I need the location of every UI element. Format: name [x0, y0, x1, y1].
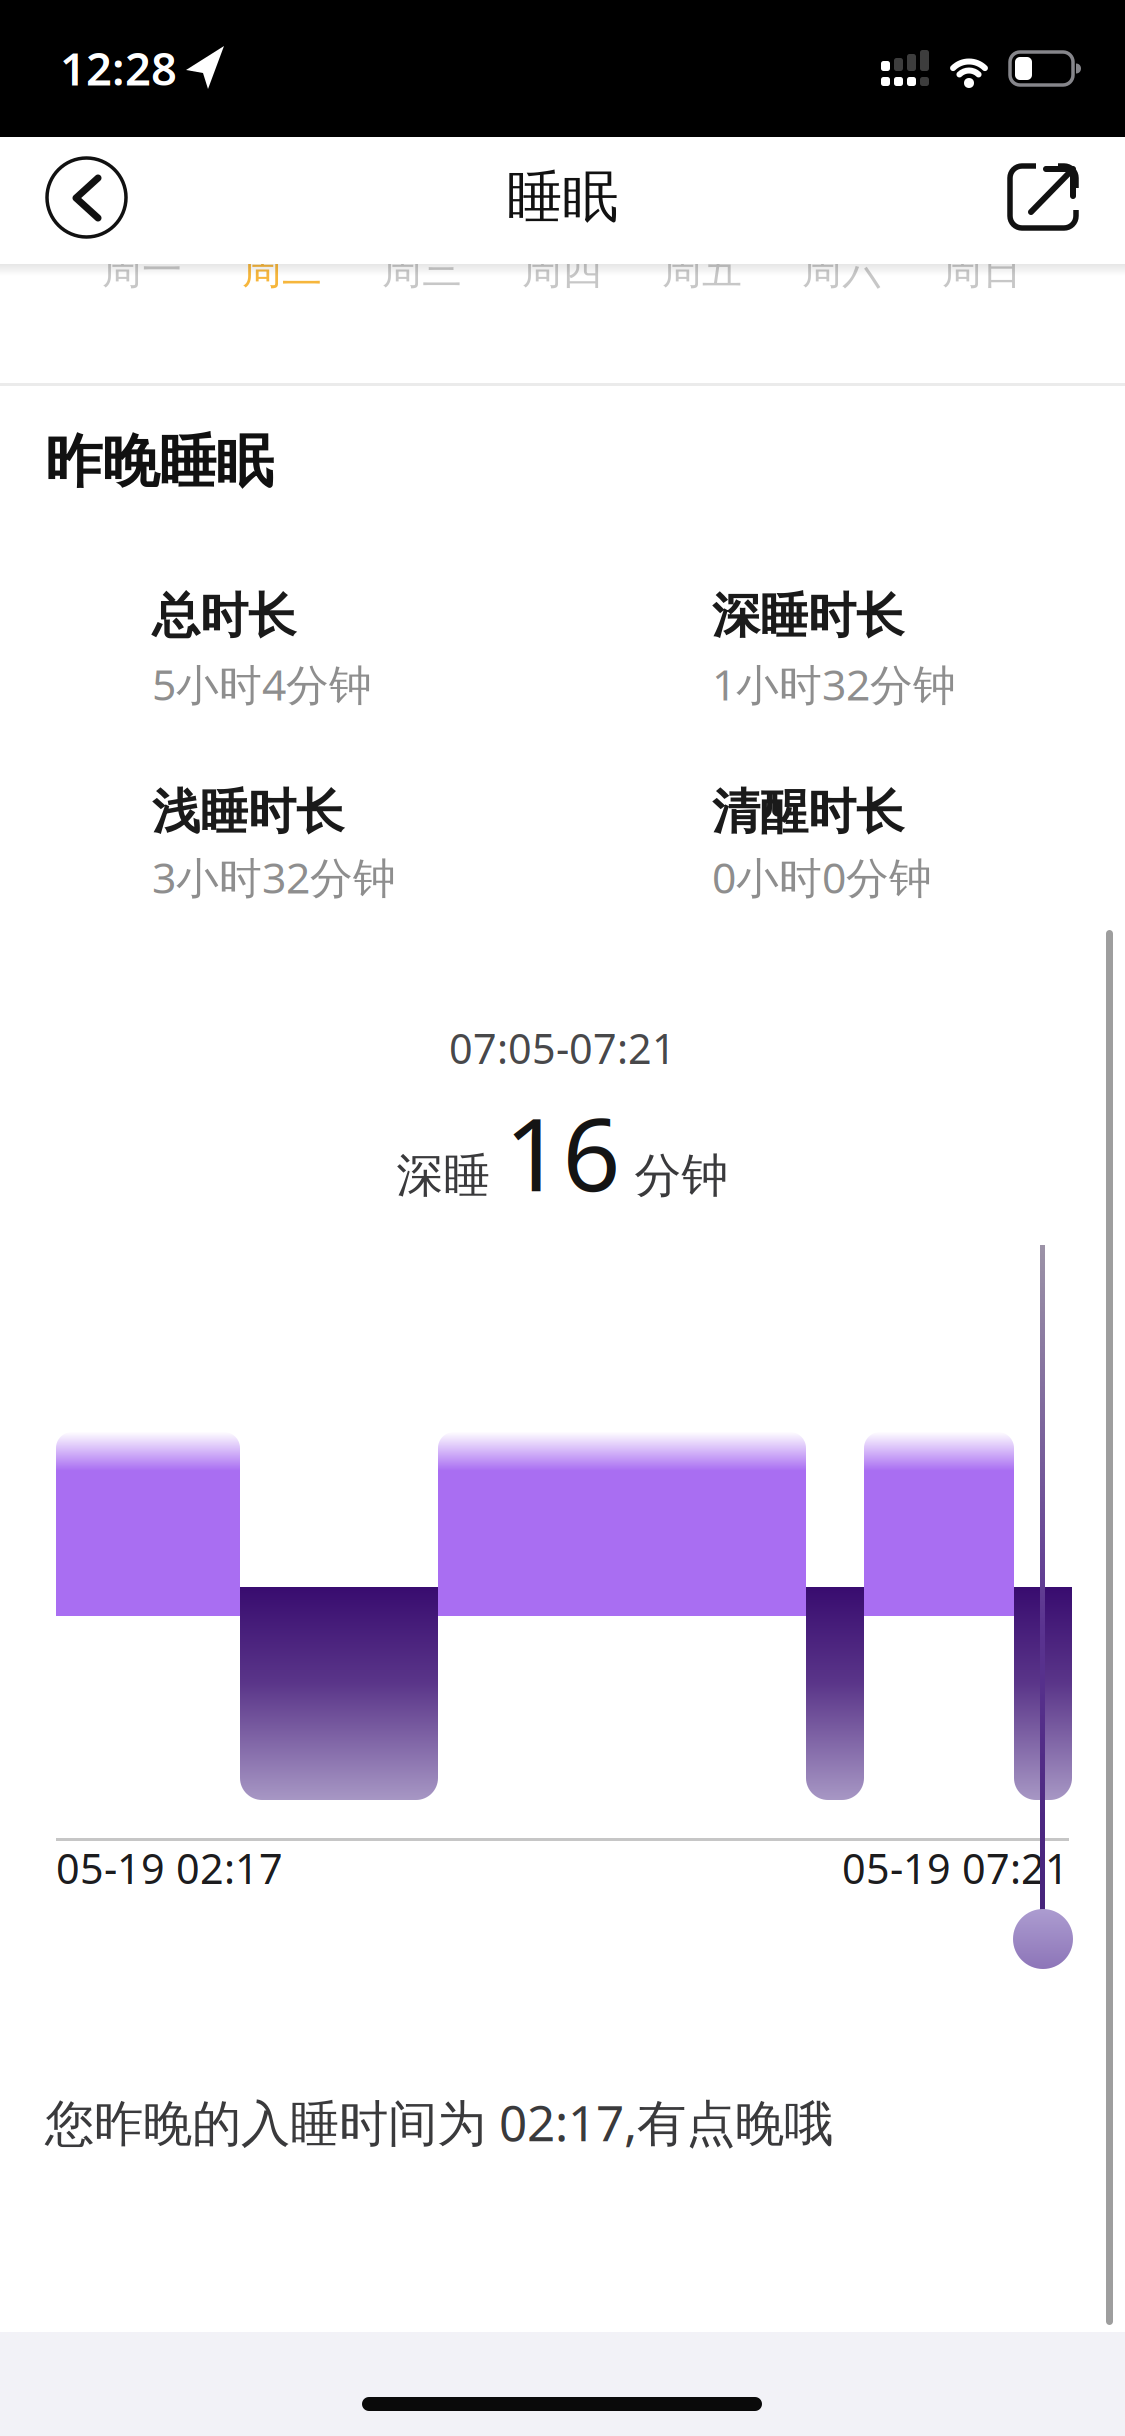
button[interactable]: 周二: [222, 246, 342, 294]
staticText: 07:05-07:21: [449, 1021, 676, 1075]
button[interactable]: 周三: [362, 246, 482, 294]
staticText: 12:28: [60, 38, 177, 98]
button[interactable]: 周日: [922, 246, 1042, 294]
button[interactable]: 周四: [502, 246, 622, 294]
staticText: 周二: [242, 245, 322, 294]
button[interactable]: Share: [0, 0, 1125, 255]
staticText: 昨晚睡眠: [45, 427, 273, 497]
staticText: 周日: [942, 245, 1022, 294]
button[interactable]: Back: [0, 0, 126, 237]
staticText: 周三: [382, 245, 462, 294]
staticText: 清醒时长: [712, 782, 904, 841]
staticText: 05-19 02:17: [56, 1841, 283, 1895]
staticText: 浅睡时长: [152, 782, 344, 841]
staticText: 周一: [102, 245, 182, 294]
staticText: 深睡: [396, 1147, 490, 1204]
staticText: 周五: [662, 245, 742, 294]
button[interactable]: 周一: [82, 246, 202, 294]
staticText: 睡眠: [506, 163, 618, 231]
button[interactable]: 周五: [642, 246, 762, 294]
staticText: 0小时0分钟: [712, 849, 932, 905]
staticText: 周四: [522, 245, 602, 294]
staticText: 3小时32分钟: [152, 849, 396, 905]
staticText: 总时长: [152, 586, 296, 645]
staticText: 16: [504, 1085, 620, 1219]
staticText: 05-19 07:21: [842, 1841, 1069, 1895]
staticText: 1小时32分钟: [712, 656, 956, 712]
staticText: 分钟: [634, 1147, 728, 1204]
staticText: 深睡时长: [712, 586, 904, 645]
staticText: 周六: [802, 245, 882, 294]
staticText: 5小时4分钟: [152, 656, 372, 712]
staticText: 您昨晚的入睡时间为 02:17,有点晚哦: [45, 2089, 833, 2155]
button[interactable]: 周六: [782, 246, 902, 294]
